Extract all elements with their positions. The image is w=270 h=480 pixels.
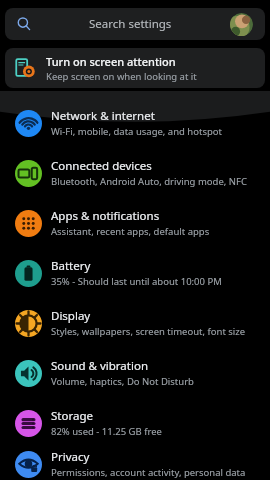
button[interactable]: Sound & vibration	[0, 348, 270, 398]
staticText: 35% - Should last until about 10:00 PM	[51, 275, 222, 288]
button[interactable]: Network & internet	[0, 98, 270, 148]
staticText: Permissions, account activity, personal …	[51, 466, 246, 479]
other: Search	[17, 17, 31, 31]
staticText: Network & internet	[51, 108, 155, 124]
staticText: Volume, haptics, Do Not Disturb	[51, 375, 194, 388]
staticText: Bluetooth, Android Auto, driving mode, N…	[51, 175, 247, 188]
staticText: Apps & notifications	[51, 208, 160, 224]
staticText: Display	[51, 308, 91, 324]
staticText: Sound & vibration	[51, 358, 148, 374]
staticText: Battery	[51, 258, 91, 274]
staticText: Keep screen on when looking at it	[46, 70, 197, 83]
button[interactable]: Turn on screen attention	[5, 48, 265, 88]
button[interactable]: Privacy	[0, 448, 270, 480]
staticText: 82% used - 11.25 GB free	[51, 425, 162, 438]
staticText: Privacy	[51, 449, 90, 465]
button[interactable]: Search	[5, 8, 265, 40]
staticText: Styles, wallpapers, screen timeout, font…	[51, 325, 246, 338]
staticText: Assistant, recent apps, default apps	[51, 225, 210, 238]
button[interactable]: Account	[230, 13, 253, 36]
staticText: Connected devices	[51, 158, 152, 174]
button[interactable]: Storage	[0, 398, 270, 448]
staticText: Turn on screen attention	[46, 54, 176, 69]
staticText: Storage	[51, 408, 93, 424]
button[interactable]: Display	[0, 298, 270, 348]
button[interactable]: Connected devices	[0, 148, 270, 198]
button[interactable]: Apps & notifications	[0, 198, 270, 248]
staticText: Wi-Fi, mobile, data usage, and hotspot	[51, 125, 222, 138]
button[interactable]: Battery	[0, 248, 270, 298]
staticText: Search settings	[89, 16, 172, 32]
